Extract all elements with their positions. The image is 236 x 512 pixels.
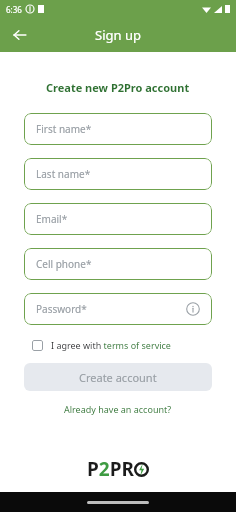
staticText: Last name*: [36, 167, 91, 181]
staticText: Password*: [36, 302, 87, 316]
button[interactable]: I agree with terms of service: [24, 339, 212, 351]
button[interactable]: Last name*: [24, 158, 212, 190]
button[interactable]: Email*: [24, 203, 212, 235]
button[interactable]: First name*: [24, 113, 212, 145]
staticText: Create account: [79, 370, 157, 385]
staticText: Cell phone*: [36, 257, 92, 271]
staticText: P2PR: [87, 456, 134, 482]
staticText: First name*: [36, 122, 92, 136]
staticText: Sign up: [95, 26, 141, 44]
staticText: I agree with terms of service: [51, 339, 171, 351]
button[interactable]: Cell phone*: [24, 248, 212, 280]
button[interactable]: Password information: [186, 302, 200, 316]
staticText: Create new P2Pro account: [46, 80, 190, 95]
button[interactable]: Create account: [24, 363, 212, 391]
button[interactable]: Back: [8, 23, 32, 47]
staticText: Email*: [36, 212, 68, 226]
button[interactable]: Already have an account?: [64, 403, 172, 415]
button[interactable]: Password*: [24, 293, 212, 325]
staticText: 6:36: [6, 4, 22, 15]
staticText: Already have an account?: [64, 403, 172, 415]
